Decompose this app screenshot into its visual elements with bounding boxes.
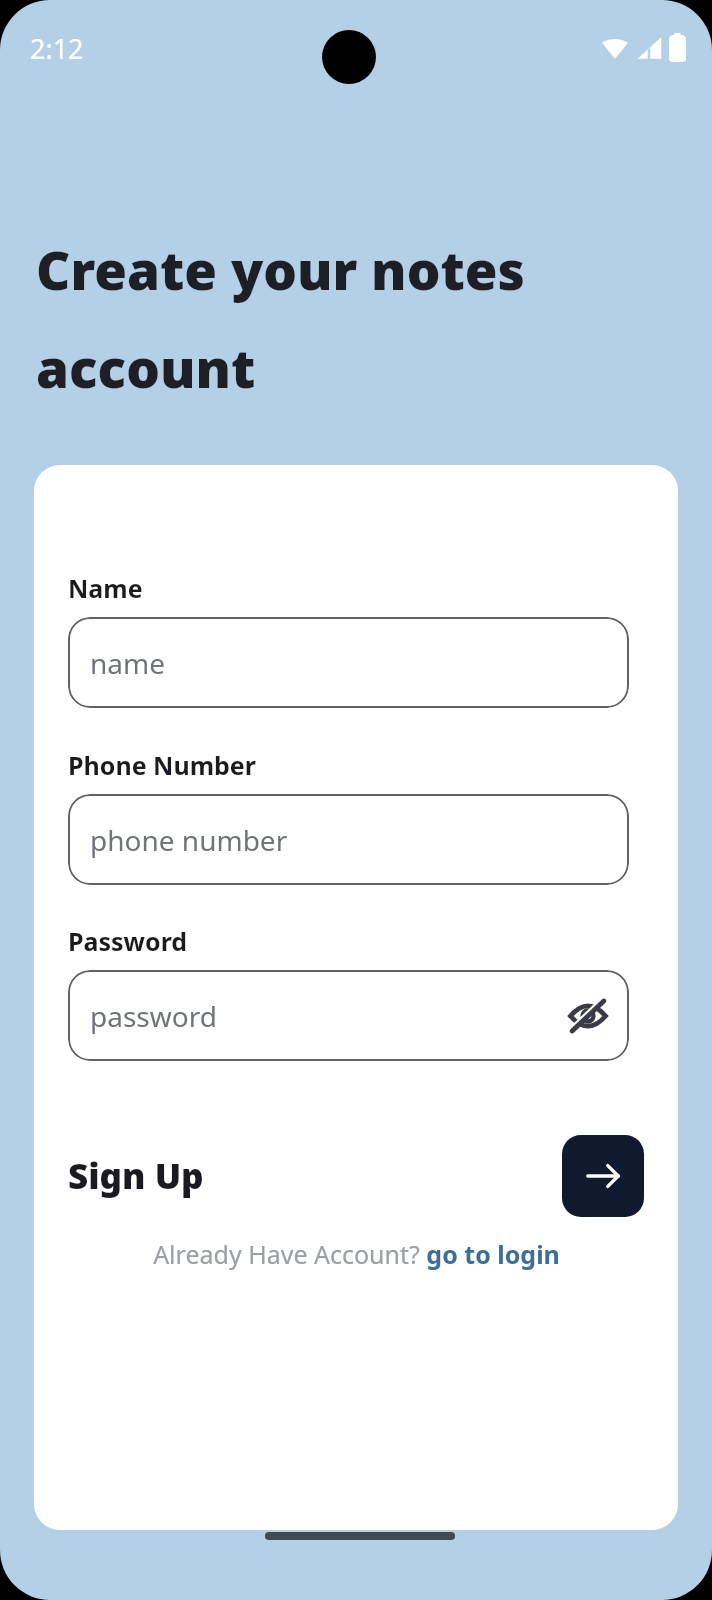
staticText: password (90, 997, 217, 1035)
staticText: Already Have Account? go to login (153, 1237, 560, 1271)
button[interactable]: phone number (68, 794, 629, 885)
staticText: Name (68, 571, 143, 605)
button[interactable]: Sign Up (562, 1135, 644, 1217)
button[interactable]: Sign Up (68, 1146, 204, 1206)
staticText: account (36, 331, 256, 403)
staticText: 2:12 (30, 30, 84, 67)
staticText: phone number (90, 821, 288, 859)
staticText: Password (68, 924, 188, 958)
button[interactable]: name (68, 617, 629, 708)
staticText: Sign Up (68, 1152, 204, 1200)
staticText: Create your notes (36, 233, 525, 305)
button[interactable]: Show password (564, 992, 612, 1040)
button[interactable]: Already Have Account? go to login (145, 1231, 568, 1277)
button[interactable]: password (68, 970, 629, 1061)
staticText: name (90, 644, 165, 682)
staticText: Phone Number (68, 748, 256, 782)
